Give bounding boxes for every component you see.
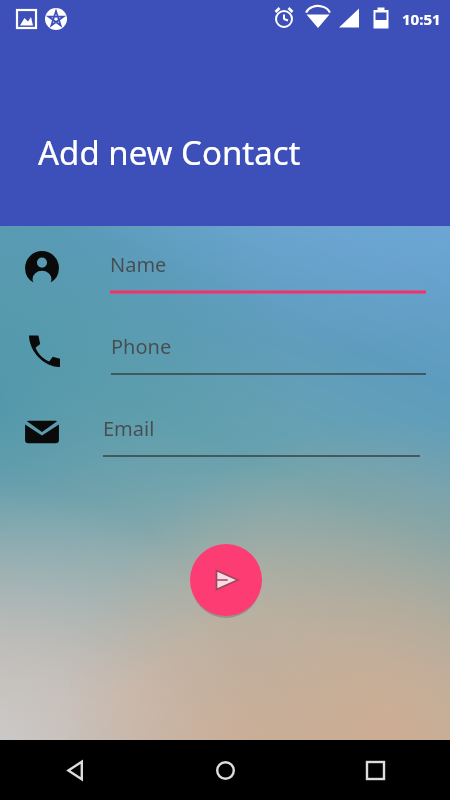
staticText: Email <box>103 415 155 442</box>
button[interactable]: Email icon <box>18 408 66 456</box>
button[interactable]: Home <box>150 740 300 800</box>
staticText: Phone <box>111 333 172 360</box>
button[interactable]: Name icon <box>18 244 66 292</box>
button[interactable]: Save contact <box>190 544 262 616</box>
button[interactable]: Back <box>0 740 150 800</box>
staticText: Add new Contact <box>38 130 301 175</box>
button[interactable]: Email <box>103 412 420 458</box>
button[interactable]: Recent apps <box>300 740 450 800</box>
staticText: 10:51 <box>402 9 441 29</box>
button[interactable]: Name <box>110 248 426 294</box>
button[interactable]: Phone icon <box>18 326 66 374</box>
staticText: Name <box>110 251 167 278</box>
button[interactable]: Phone <box>111 330 426 376</box>
